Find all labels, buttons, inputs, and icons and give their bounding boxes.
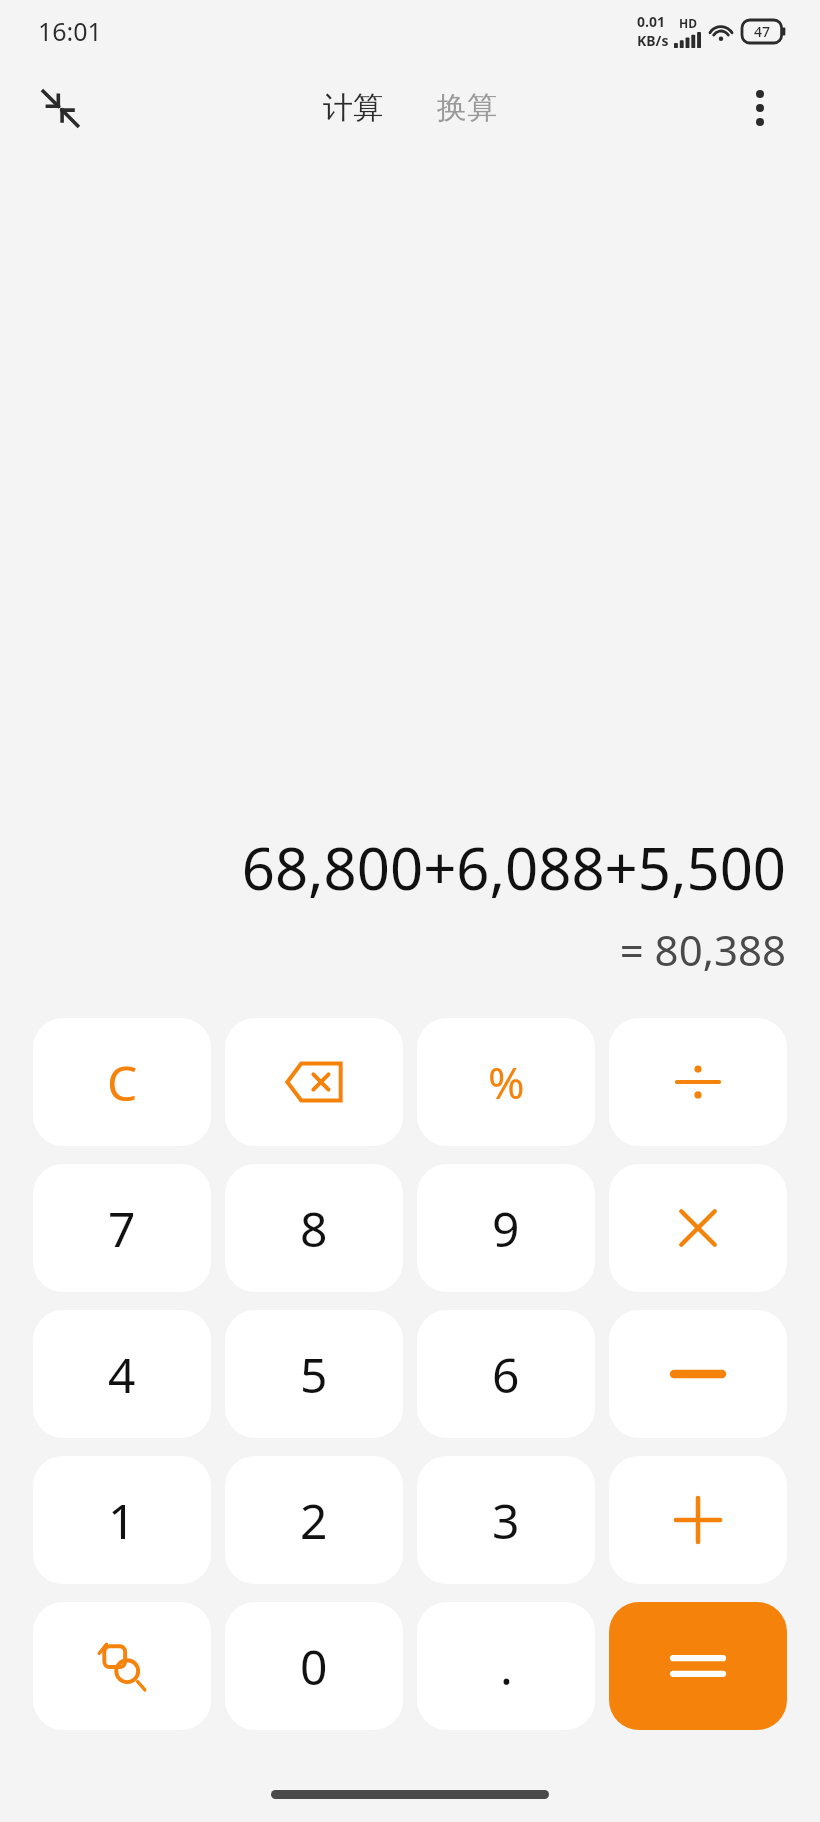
- button[interactable]: Equals: [609, 1602, 787, 1730]
- button[interactable]: 4: [33, 1310, 211, 1438]
- button[interactable]: %: [417, 1018, 595, 1146]
- button[interactable]: 8: [225, 1164, 403, 1292]
- staticText: 计算: [323, 89, 383, 127]
- staticText: 16:01: [38, 14, 102, 48]
- staticText: 3: [492, 1488, 520, 1553]
- staticText: %: [488, 1052, 525, 1112]
- button[interactable]: 2: [225, 1456, 403, 1584]
- button[interactable]: More options: [730, 78, 790, 138]
- staticText: 2: [300, 1488, 328, 1553]
- staticText: HD: [679, 15, 697, 31]
- button[interactable]: 换算: [427, 83, 507, 133]
- button[interactable]: 3: [417, 1456, 595, 1584]
- button[interactable]: 计算: [313, 83, 393, 133]
- button[interactable]: C: [33, 1018, 211, 1146]
- button[interactable]: Subtract: [609, 1310, 787, 1438]
- button[interactable]: 6: [417, 1310, 595, 1438]
- staticText: 6: [492, 1342, 520, 1407]
- staticText: C: [107, 1050, 138, 1115]
- staticText: 1: [108, 1488, 136, 1553]
- staticText: 47: [754, 22, 771, 41]
- button[interactable]: .: [417, 1602, 595, 1730]
- staticText: 5: [300, 1342, 328, 1407]
- staticText: 9: [492, 1196, 520, 1261]
- button[interactable]: 7: [33, 1164, 211, 1292]
- staticText: 68,800+6,088+5,500: [241, 828, 786, 907]
- staticText: = 80,388: [619, 921, 786, 978]
- staticText: .: [500, 1634, 513, 1699]
- button[interactable]: 1: [33, 1456, 211, 1584]
- button[interactable]: Divide: [609, 1018, 787, 1146]
- button[interactable]: Backspace: [225, 1018, 403, 1146]
- button[interactable]: 9: [417, 1164, 595, 1292]
- staticText: 0: [300, 1634, 328, 1699]
- staticText: 换算: [437, 89, 497, 127]
- staticText: KB/s: [637, 31, 669, 50]
- staticText: 4: [108, 1342, 136, 1407]
- staticText: 0.01: [637, 12, 665, 31]
- button[interactable]: Collapse: [28, 76, 92, 140]
- button[interactable]: 5: [225, 1310, 403, 1438]
- button[interactable]: Multiply: [609, 1164, 787, 1292]
- staticText: 7: [108, 1196, 136, 1261]
- staticText: 8: [300, 1196, 328, 1261]
- button[interactable]: Scientific: [33, 1602, 211, 1730]
- button[interactable]: Add: [609, 1456, 787, 1584]
- button[interactable]: 0: [225, 1602, 403, 1730]
